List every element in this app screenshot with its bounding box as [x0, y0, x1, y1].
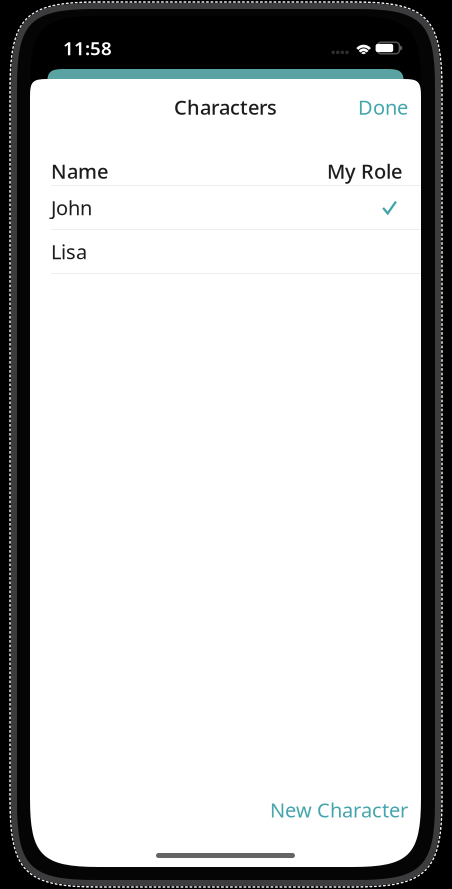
button[interactable]: Lisa — [30, 230, 421, 273]
staticText: New Character — [270, 796, 408, 823]
button[interactable]: John — [30, 186, 421, 229]
staticText: 11:58 — [63, 36, 112, 60]
staticText: Name — [51, 158, 108, 184]
staticText: My Role — [327, 158, 402, 184]
staticText: John — [51, 194, 92, 221]
button[interactable]: New Character — [254, 785, 421, 834]
button[interactable]: Done — [342, 83, 421, 131]
staticText: Lisa — [51, 238, 87, 265]
staticText: Done — [358, 94, 408, 120]
staticText: Characters — [174, 94, 277, 120]
